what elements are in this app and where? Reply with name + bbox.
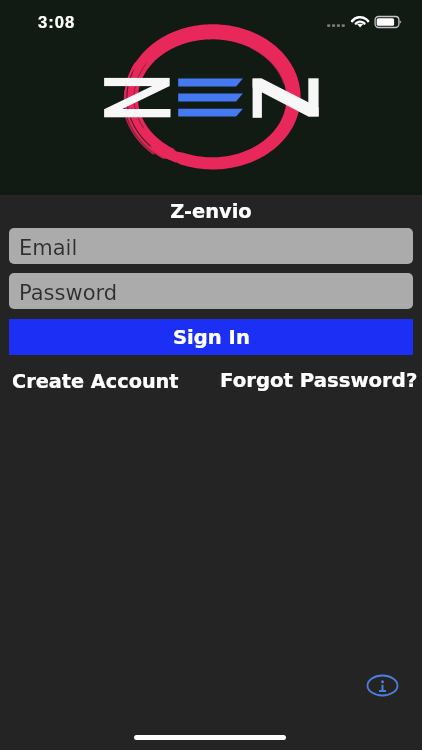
- staticText: Z-envio: [170, 200, 252, 223]
- button[interactable]: Forgot Password?: [220, 369, 418, 392]
- staticText: Email: [19, 236, 78, 260]
- staticText: Password: [19, 281, 118, 305]
- button[interactable]: Sign In: [9, 319, 413, 355]
- button[interactable]: Create Account: [12, 370, 179, 392]
- staticText: Sign In: [173, 326, 250, 349]
- button[interactable]: Information: [366, 673, 399, 698]
- staticText: 3:08: [38, 13, 76, 32]
- button[interactable]: Email: [9, 228, 413, 264]
- button[interactable]: Password: [9, 273, 413, 309]
